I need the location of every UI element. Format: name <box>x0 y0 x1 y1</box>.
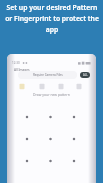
staticText: All Images <box>14 68 30 72</box>
staticText: Set up your desired Pattern or Fingerpri… <box>5 3 99 34</box>
staticText: ALL <box>83 73 88 77</box>
staticText: Draw your new pattern <box>33 92 70 97</box>
staticText: Require Camera Files <box>33 73 63 77</box>
staticText: 12:30 <box>12 61 20 65</box>
button[interactable]: Profile <box>80 72 90 78</box>
button[interactable]: Require Camera Files <box>18 71 77 79</box>
